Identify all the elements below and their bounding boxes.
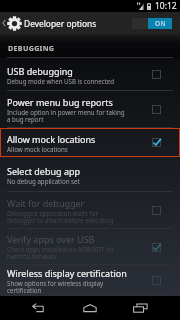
button[interactable]: Navigate up xyxy=(0,12,22,34)
staticText: Include option in power menu for taking … xyxy=(7,108,128,124)
button[interactable]: ON xyxy=(132,18,172,29)
staticText: Check apps installed via ADB/ADT for har… xyxy=(7,245,128,261)
button[interactable]: Home xyxy=(73,296,107,320)
staticText: Wait for debugger xyxy=(7,197,85,209)
staticText: Allow mock locations xyxy=(7,133,96,145)
staticText: Developer options xyxy=(24,18,97,29)
button[interactable]: Back xyxy=(23,296,57,320)
button[interactable]: Wireless display certification xyxy=(0,265,180,296)
staticText: Allow mock locations xyxy=(7,145,68,153)
staticText: USB debugging xyxy=(7,65,73,77)
button[interactable]: Power menu bug reports xyxy=(0,91,180,128)
staticText: Wireless display certification xyxy=(7,267,127,279)
staticText: Select debug app xyxy=(7,165,81,177)
button[interactable]: Verify apps over USB xyxy=(0,229,180,265)
button[interactable]: USB debugging xyxy=(0,58,180,91)
button[interactable]: Select debug app xyxy=(0,157,180,192)
staticText: ON xyxy=(155,19,166,28)
button[interactable]: Recent apps xyxy=(123,296,157,320)
staticText: Debug mode when USB is connected xyxy=(7,77,115,85)
staticText: 10:12 xyxy=(155,0,177,12)
staticText: Power menu bug reports xyxy=(7,96,113,108)
button[interactable]: Allow mock locations xyxy=(0,128,180,157)
staticText: No debug application set xyxy=(7,177,80,185)
staticText: DEBUGGING xyxy=(8,43,55,53)
button[interactable]: Wait for debugger xyxy=(0,192,180,229)
staticText: Show options for wireless display certif… xyxy=(7,279,128,295)
staticText: Verify apps over USB xyxy=(7,233,95,245)
staticText: Debugged application waits for debugger … xyxy=(7,209,128,225)
